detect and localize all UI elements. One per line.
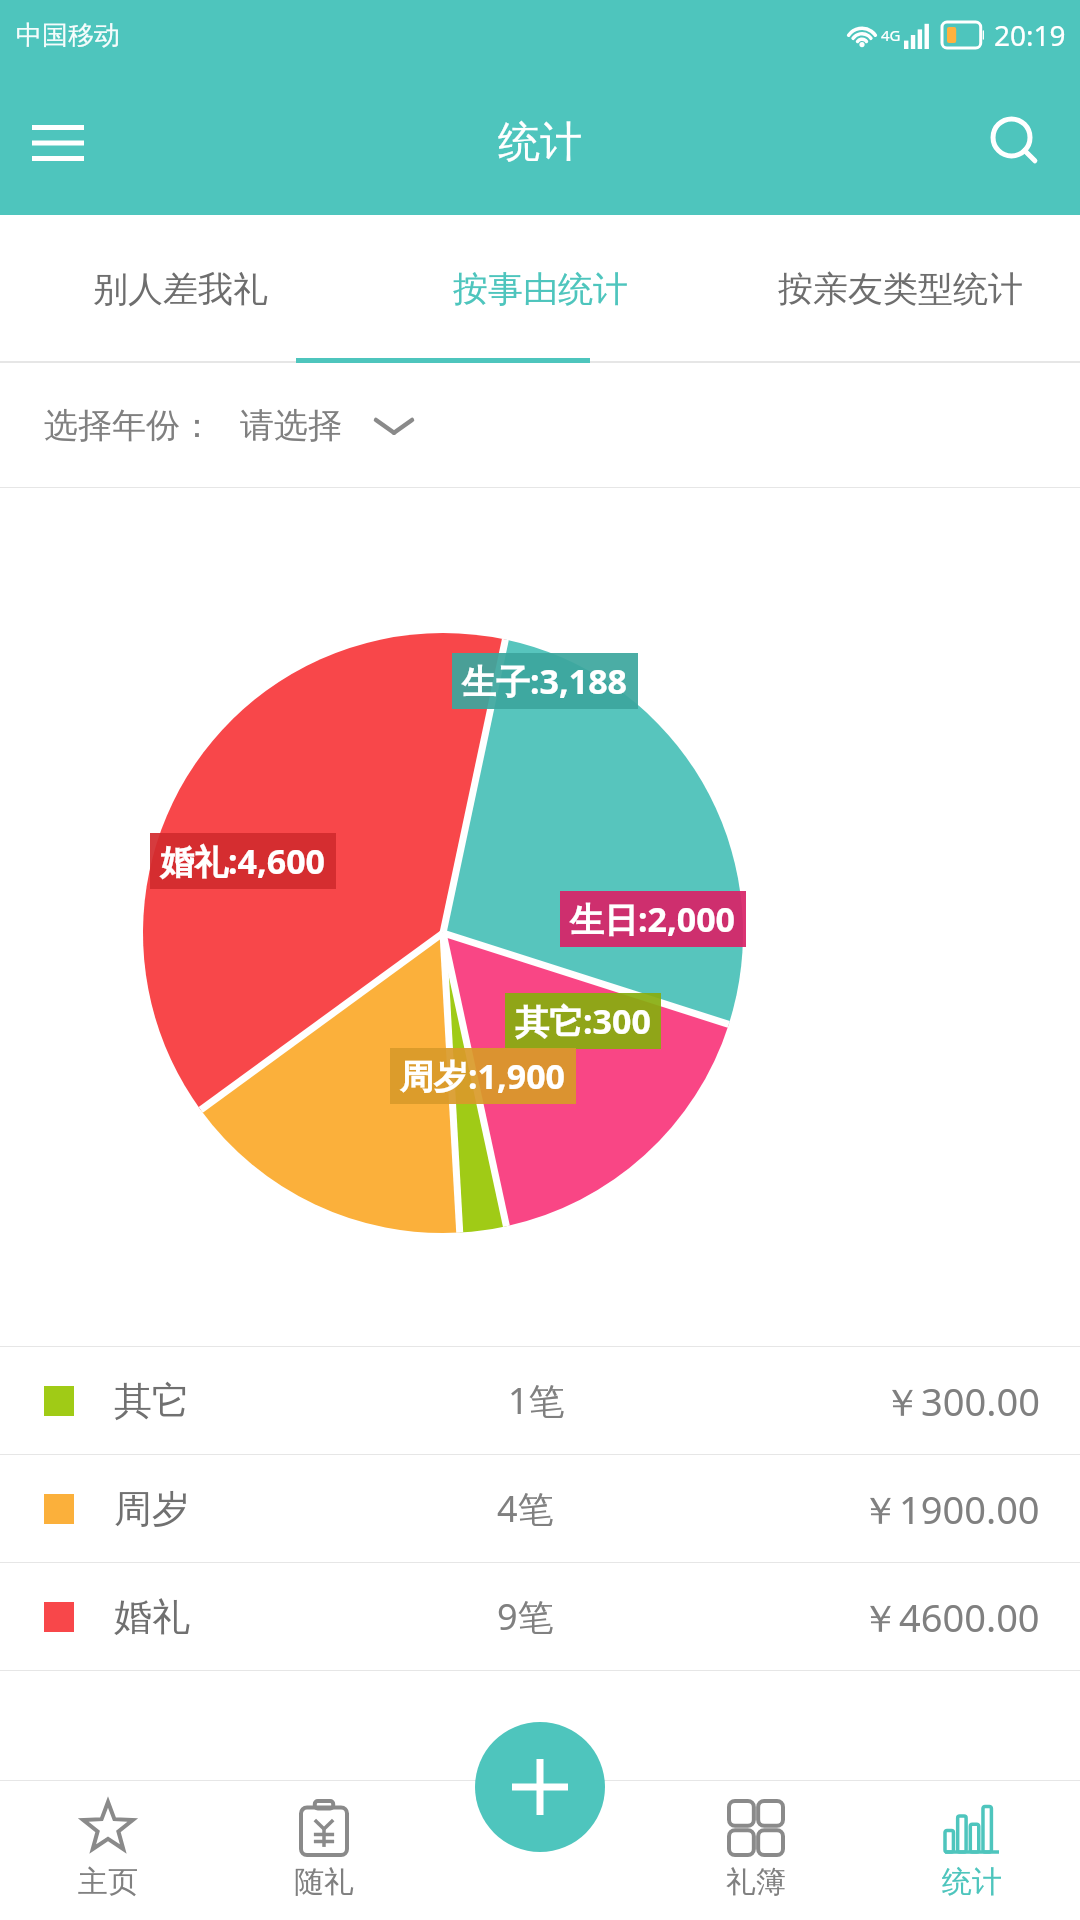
staticText: 选择年份： xyxy=(44,404,214,447)
staticText: 4G xyxy=(881,25,901,45)
staticText: 中国移动 xyxy=(16,19,120,52)
staticText: 按亲友类型统计 xyxy=(778,267,1023,311)
staticText: 婚礼:4,600 xyxy=(160,838,326,884)
button[interactable]: 随礼 xyxy=(216,1780,432,1920)
staticText: ￥300.00 xyxy=(883,1375,1040,1427)
staticText: 生日:2,000 xyxy=(570,896,736,942)
staticText: 20:19 xyxy=(994,16,1066,54)
staticText: 统计 xyxy=(942,1863,1002,1901)
button[interactable]: 统计 xyxy=(864,1780,1080,1920)
staticText: 4笔 xyxy=(497,1484,554,1533)
staticText: 随礼 xyxy=(294,1863,354,1901)
button[interactable]: Search xyxy=(978,105,1054,181)
button[interactable]: 选择年份： xyxy=(44,404,412,447)
button[interactable]: 礼簿 xyxy=(648,1780,864,1920)
staticText: 礼簿 xyxy=(726,1863,786,1901)
staticText: 请选择 xyxy=(240,404,342,447)
staticText: 按事由统计 xyxy=(453,267,628,311)
button[interactable]: Menu xyxy=(22,107,94,179)
staticText: 周岁:1,900 xyxy=(400,1053,566,1099)
button[interactable]: Add xyxy=(475,1722,605,1852)
button[interactable]: 婚礼 xyxy=(0,1563,1080,1670)
staticText: 周岁 xyxy=(114,1485,190,1533)
staticText: ￥1900.00 xyxy=(861,1483,1040,1535)
staticText: 别人差我礼 xyxy=(93,267,268,311)
staticText: 1笔 xyxy=(508,1376,565,1425)
button[interactable]: 其它 xyxy=(0,1347,1080,1454)
staticText: 统计 xyxy=(498,116,582,169)
staticText: 主页 xyxy=(78,1863,138,1901)
staticText: 其它:300 xyxy=(515,998,651,1044)
staticText: 生子:3,188 xyxy=(462,658,628,704)
staticText: 其它 xyxy=(114,1377,190,1425)
button[interactable]: 别人差我礼 xyxy=(0,215,360,363)
button[interactable]: 主页 xyxy=(0,1780,216,1920)
staticText: ￥4600.00 xyxy=(861,1591,1040,1643)
staticText: 9笔 xyxy=(497,1592,554,1641)
button[interactable]: 按亲友类型统计 xyxy=(720,215,1080,363)
button[interactable]: 按事由统计 xyxy=(360,215,720,363)
button[interactable]: 周岁 xyxy=(0,1455,1080,1562)
staticText: 婚礼 xyxy=(114,1593,190,1641)
